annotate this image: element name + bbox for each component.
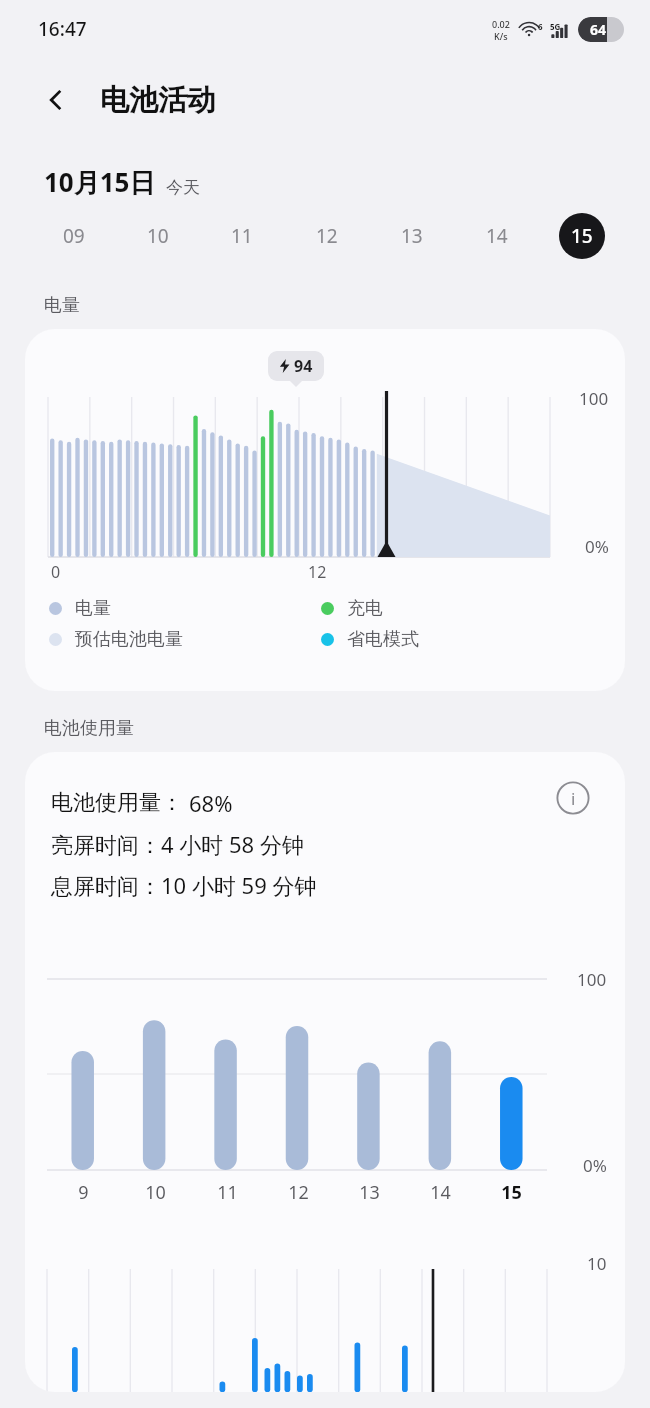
staticText: 68% bbox=[189, 788, 233, 818]
staticText: 64 bbox=[590, 20, 607, 39]
button[interactable]: 11 bbox=[200, 211, 284, 261]
staticText: 电量 bbox=[44, 294, 80, 317]
staticText: 12 bbox=[316, 223, 338, 249]
staticText: 电池活动 bbox=[100, 82, 216, 119]
staticText: i bbox=[571, 787, 576, 810]
staticText: 12 bbox=[308, 561, 327, 583]
button[interactable]: 94 bbox=[25, 329, 625, 691]
staticText: 省电模式 bbox=[347, 628, 419, 651]
button[interactable]: 12 bbox=[284, 211, 369, 261]
button[interactable]: 09 bbox=[32, 211, 116, 261]
button[interactable]: 13 bbox=[369, 211, 454, 261]
button[interactable]: 信息 bbox=[25, 752, 625, 1392]
staticText: 电量 bbox=[75, 597, 111, 620]
staticText: 11 bbox=[231, 223, 253, 249]
staticText: 今天 bbox=[166, 177, 200, 198]
staticText: 12 bbox=[288, 1180, 309, 1205]
staticText: 10 bbox=[147, 223, 169, 249]
staticText: 11 bbox=[217, 1180, 238, 1205]
staticText: 0.02 bbox=[492, 18, 510, 30]
staticText: K/s bbox=[494, 30, 508, 42]
staticText: 电池使用量： bbox=[51, 789, 183, 817]
staticText: 息屏时间：10 小时 59 分钟 bbox=[51, 870, 317, 900]
staticText: 100 bbox=[579, 387, 609, 410]
button[interactable]: 10 bbox=[116, 211, 200, 261]
staticText: 15 bbox=[501, 1180, 522, 1205]
staticText: 电池使用量 bbox=[44, 717, 134, 740]
staticText: 14 bbox=[430, 1180, 451, 1205]
staticText: 5G bbox=[550, 21, 561, 32]
staticText: 10月15日 bbox=[44, 164, 156, 200]
staticText: 0 bbox=[51, 561, 61, 583]
staticText: 亮屏时间：4 小时 58 分钟 bbox=[51, 829, 304, 859]
button[interactable]: 返回 bbox=[34, 78, 78, 122]
staticText: 充电 bbox=[347, 597, 383, 620]
staticText: 0% bbox=[583, 1154, 607, 1177]
staticText: 14 bbox=[486, 223, 508, 249]
button[interactable]: 15 bbox=[539, 211, 624, 261]
staticText: 13 bbox=[401, 223, 423, 249]
staticText: 9 bbox=[78, 1180, 89, 1205]
staticText: 13 bbox=[359, 1180, 380, 1205]
staticText: 09 bbox=[63, 223, 85, 249]
staticText: 预估电池电量 bbox=[75, 628, 183, 651]
staticText: 100 bbox=[577, 968, 607, 991]
staticText: 10 bbox=[587, 1252, 607, 1275]
staticText: 10 bbox=[145, 1180, 166, 1205]
staticText: 94 bbox=[294, 355, 313, 377]
button[interactable]: 信息 bbox=[553, 778, 593, 818]
staticText: 16:47 bbox=[38, 16, 87, 42]
staticText: 15 bbox=[571, 223, 593, 249]
staticText: 6 bbox=[538, 21, 543, 32]
button[interactable]: 14 bbox=[454, 211, 539, 261]
staticText: 0% bbox=[585, 535, 609, 558]
